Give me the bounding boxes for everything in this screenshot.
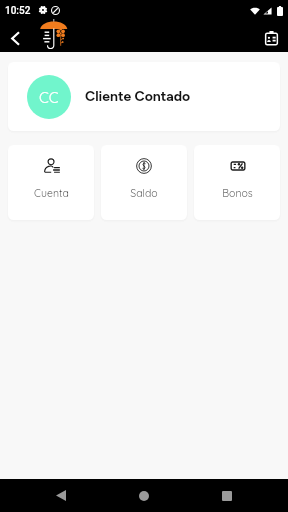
button[interactable]: Back [0,24,30,52]
button[interactable]: CC [8,62,280,131]
staticText: Saldo [130,186,158,199]
staticText: Bonos [222,186,253,199]
staticText: Cuenta [34,186,69,199]
button[interactable]: Credential [255,24,287,52]
button[interactable]: Home [122,479,166,512]
button[interactable]: Saldo [101,145,187,220]
button[interactable]: Recents [205,479,249,512]
button[interactable]: Back [39,479,83,512]
staticText: 10:52 [5,5,31,17]
button[interactable]: Cuenta [8,145,94,220]
button[interactable]: Bonos [194,145,280,220]
staticText: Cliente Contado [85,88,191,105]
staticText: CC [39,88,59,107]
